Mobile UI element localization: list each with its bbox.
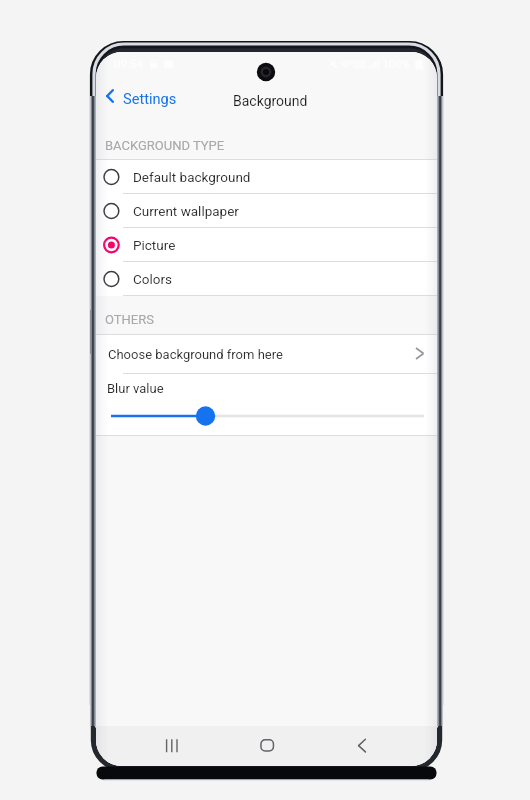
staticText: Picture (133, 237, 176, 253)
button[interactable]: Colors (96, 262, 437, 296)
button[interactable]: Recent apps (150, 730, 194, 762)
staticText: Settings (123, 90, 177, 107)
button[interactable]: Current wallpaper (96, 194, 437, 228)
button[interactable] (96, 403, 437, 429)
staticText: BACKGROUND TYPE (105, 138, 225, 153)
button[interactable]: Back (340, 730, 384, 762)
staticText: Default background (133, 169, 251, 185)
staticText: Current wallpaper (133, 203, 239, 219)
button[interactable]: Choose background from here (96, 335, 437, 374)
staticText: Choose background from here (108, 347, 283, 362)
button[interactable]: Picture (96, 228, 437, 262)
staticText: OTHERS (105, 312, 154, 327)
button[interactable]: Settings (101, 85, 183, 108)
staticText: Colors (133, 271, 173, 287)
staticText: Blur value (107, 381, 164, 396)
button[interactable]: Default background (96, 160, 437, 194)
button[interactable]: Home (241, 730, 285, 762)
staticText: Background (233, 93, 308, 109)
